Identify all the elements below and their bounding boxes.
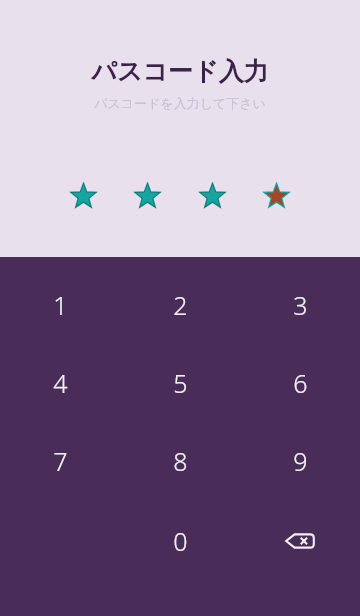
button[interactable]: 8 (120, 422, 240, 500)
staticText: パスコード入力 (91, 56, 269, 87)
button[interactable]: 7 (0, 422, 120, 500)
staticText: 2 (173, 288, 188, 322)
staticText: 0 (173, 524, 188, 558)
button[interactable]: 2 (120, 266, 240, 344)
staticText: 1 (53, 288, 68, 322)
button[interactable]: Backspace (240, 500, 360, 582)
staticText: 4 (53, 366, 68, 400)
button[interactable]: 1 (0, 266, 120, 344)
button[interactable]: 3 (240, 266, 360, 344)
button[interactable]: 0 (120, 500, 240, 582)
staticText: 6 (293, 366, 308, 400)
staticText: 3 (293, 288, 308, 322)
staticText: 5 (173, 366, 188, 400)
button[interactable]: 5 (120, 344, 240, 422)
staticText: 7 (53, 444, 68, 478)
staticText: パスコードを入力して下さい (94, 95, 266, 111)
button[interactable]: 9 (240, 422, 360, 500)
staticText: 8 (173, 444, 188, 478)
button[interactable]: 6 (240, 344, 360, 422)
button[interactable]: 4 (0, 344, 120, 422)
staticText: 9 (293, 444, 308, 478)
